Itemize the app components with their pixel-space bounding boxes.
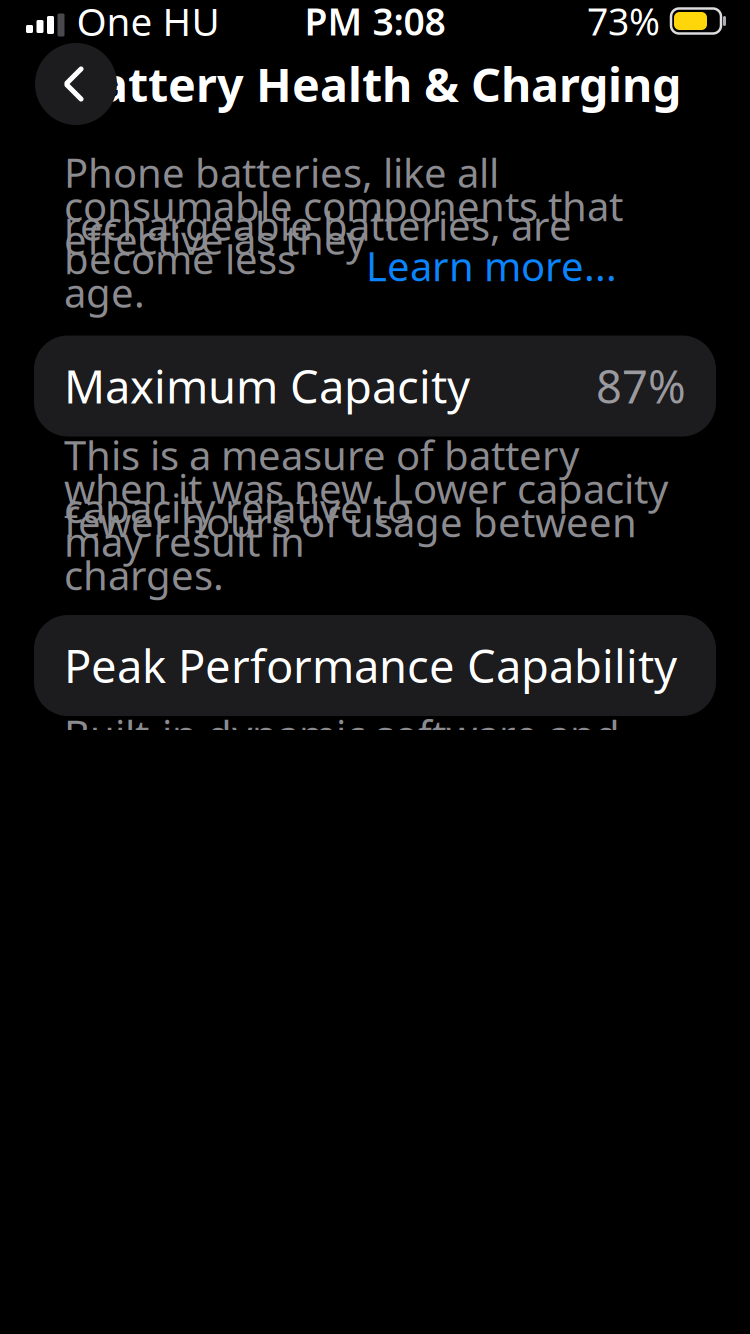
staticText: Maximum Capacity [64,356,470,416]
staticText: Phone batteries, like all rechargeable b… [64,146,572,252]
staticText: Built-in dynamic software and hardware s… [64,708,620,814]
staticText: effective as they age. [64,213,366,319]
staticText: consumable components that become less [64,179,623,285]
staticText: 87% [596,356,686,416]
staticText: Learn more... [366,239,617,292]
staticText: when it was new. Lower capacity may resu… [64,462,668,568]
staticText: Peak Performance Capability [64,635,677,696]
staticText: This is a measure of battery capacity re… [64,428,579,534]
staticText: 73% [587,0,660,46]
staticText: Battery Health & Charging [69,53,681,115]
button[interactable]: Back [35,43,117,125]
staticText: fewer hours of usage between charges. [64,495,637,601]
staticText: PM 3:08 [304,0,445,46]
button[interactable]: Maximum Capacity [34,335,716,436]
button[interactable]: Peak Performance Capability [34,615,716,716]
staticText: One HU [76,0,219,47]
